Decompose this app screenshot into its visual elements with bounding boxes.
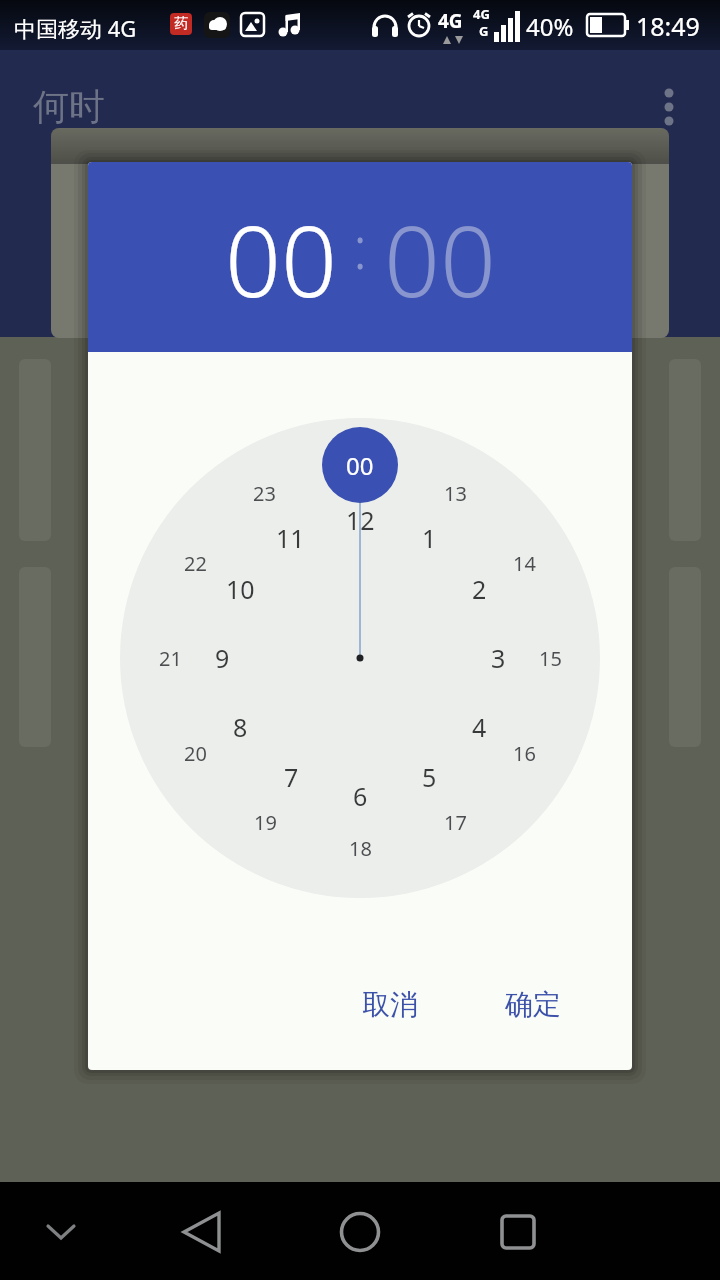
staticText: 9 [215, 641, 230, 675]
staticText: 10 [226, 572, 255, 606]
staticText: 11 [276, 521, 305, 555]
button[interactable] [34, 1204, 88, 1258]
staticText: 中国移动 4G [14, 13, 137, 43]
staticText: 4G [473, 5, 490, 23]
staticText: 3 [491, 641, 506, 675]
staticText: 14 [513, 550, 536, 577]
button[interactable] [175, 1205, 229, 1259]
staticText: 7 [284, 760, 299, 794]
staticText: 22 [184, 550, 207, 577]
staticText: 21 [159, 645, 182, 672]
staticText: 19 [254, 809, 277, 836]
staticText: 12 [346, 503, 375, 537]
staticText: 确定 [505, 987, 561, 1022]
staticText: G [479, 22, 489, 40]
staticText: 16 [513, 740, 536, 767]
button[interactable] [491, 1205, 545, 1259]
staticText: 4 [472, 710, 487, 744]
staticText: 药 [174, 15, 188, 33]
staticText: 00 [346, 449, 374, 482]
staticText: 2 [472, 572, 487, 606]
staticText: 17 [444, 809, 467, 836]
staticText: 4G [438, 8, 463, 34]
staticText: 13 [444, 480, 467, 507]
staticText: 1 [422, 521, 437, 555]
staticText: 15 [539, 645, 562, 672]
button[interactable] [333, 1205, 387, 1259]
staticText: 00 [384, 192, 496, 325]
staticText: 何时 [33, 84, 105, 129]
staticText: : [353, 207, 368, 286]
staticText: 取消 [362, 987, 418, 1022]
staticText: 18:49 [636, 9, 700, 43]
button[interactable] [651, 86, 687, 130]
button[interactable]: 取消 [340, 976, 440, 1032]
staticText: 40% [526, 10, 574, 43]
staticText: 18 [349, 835, 372, 862]
staticText: 23 [253, 480, 276, 507]
staticText: 6 [353, 779, 368, 813]
button[interactable]: 确定 [483, 976, 583, 1032]
staticText: 00 [225, 192, 337, 325]
staticText: 20 [184, 740, 207, 767]
staticText: 5 [422, 760, 437, 794]
staticText: 8 [233, 710, 248, 744]
